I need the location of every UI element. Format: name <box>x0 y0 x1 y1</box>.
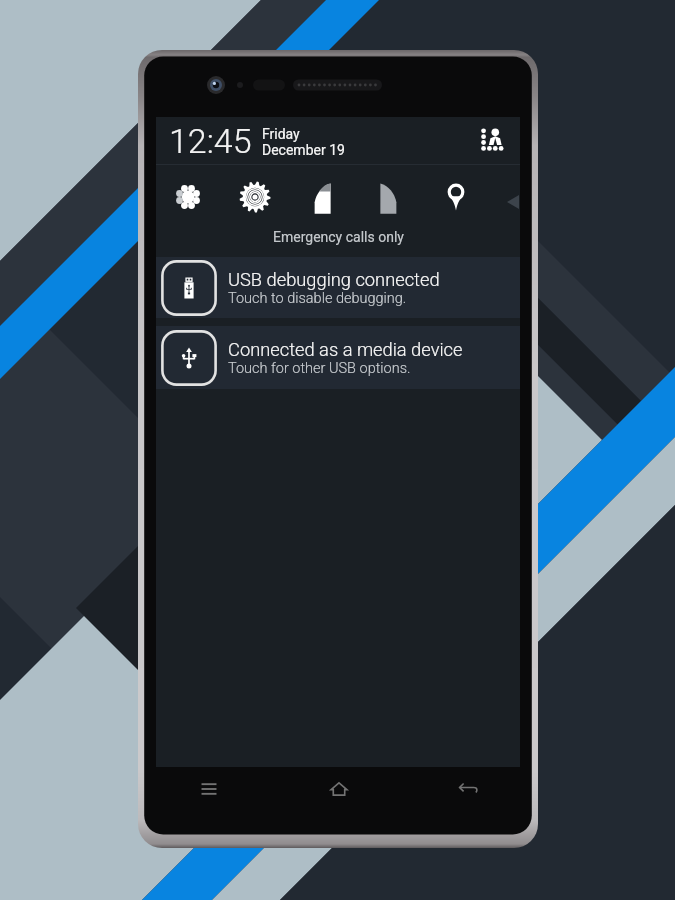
button[interactable]: Location <box>434 175 478 219</box>
button[interactable]: Switch user <box>476 123 512 159</box>
staticText: Connected as a media device <box>228 339 463 360</box>
button[interactable]: Back <box>403 765 532 813</box>
button[interactable]: USB debugging connected <box>156 257 520 318</box>
staticText: Touch for other USB options. <box>228 360 411 377</box>
staticText: Touch to disable debugging. <box>228 290 407 307</box>
staticText: December 19 <box>262 142 345 158</box>
button[interactable]: Settings <box>233 175 277 219</box>
button[interactable]: SIM 1 signal <box>300 175 344 219</box>
staticText: Emergency calls only <box>273 229 404 245</box>
staticText: 12:45 <box>169 121 252 161</box>
button[interactable]: Recent apps <box>144 765 274 813</box>
staticText: USB debugging connected <box>228 269 440 290</box>
button[interactable]: SIM 2 signal <box>367 175 411 219</box>
button[interactable]: Home <box>274 765 403 813</box>
staticText: Friday <box>262 126 300 142</box>
button[interactable]: Brightness <box>166 175 210 219</box>
button[interactable]: Connected as a media device <box>156 326 520 389</box>
